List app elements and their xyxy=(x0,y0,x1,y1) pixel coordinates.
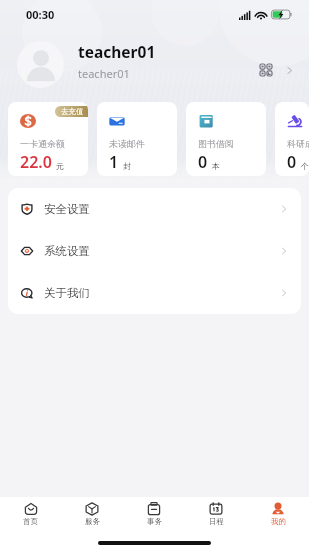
staticText: 1 xyxy=(109,151,119,173)
staticText: 个 xyxy=(301,161,309,171)
button[interactable]: 科研成果 xyxy=(275,102,309,176)
staticText: 去充值 xyxy=(61,107,84,116)
staticText: 0 xyxy=(198,151,208,173)
staticText: 安全设置 xyxy=(44,202,90,216)
staticText: 系统设置 xyxy=(44,244,90,258)
button[interactable]: 图书借阅 xyxy=(186,102,266,176)
button[interactable]: 事务 xyxy=(123,502,185,526)
staticText: 我的 xyxy=(271,517,286,526)
button[interactable]: 关于我们 xyxy=(8,272,301,314)
button[interactable]: QR code scan xyxy=(256,60,276,80)
staticText: teacher01 xyxy=(78,66,130,81)
button[interactable]: 日程 xyxy=(185,502,247,526)
staticText: 图书借阅 xyxy=(198,138,234,149)
button[interactable]: 未读邮件 xyxy=(97,102,177,176)
staticText: 事务 xyxy=(147,517,162,526)
staticText: 日程 xyxy=(209,517,224,526)
staticText: 封 xyxy=(123,161,131,171)
staticText: 00:30 xyxy=(26,7,55,22)
button[interactable]: 去充值 xyxy=(61,106,84,117)
button[interactable]: 一卡通余额 xyxy=(8,102,88,176)
staticText: 首页 xyxy=(23,517,38,526)
staticText: 科研成果 xyxy=(287,138,309,149)
button[interactable]: 安全设置 xyxy=(8,188,301,230)
staticText: 未读邮件 xyxy=(109,138,145,149)
button[interactable]: 系统设置 xyxy=(8,230,301,272)
button[interactable]: 首页 xyxy=(0,502,61,526)
staticText: 服务 xyxy=(85,517,100,526)
button[interactable]: 服务 xyxy=(61,502,123,526)
staticText: 0 xyxy=(287,151,297,173)
staticText: 元 xyxy=(56,161,64,171)
staticText: 一卡通余额 xyxy=(20,138,65,149)
staticText: 22.0 xyxy=(20,151,52,173)
staticText: teacher01 xyxy=(78,41,156,62)
button[interactable]: 我的 xyxy=(247,502,309,526)
staticText: 关于我们 xyxy=(44,286,90,300)
staticText: 本 xyxy=(212,161,220,171)
